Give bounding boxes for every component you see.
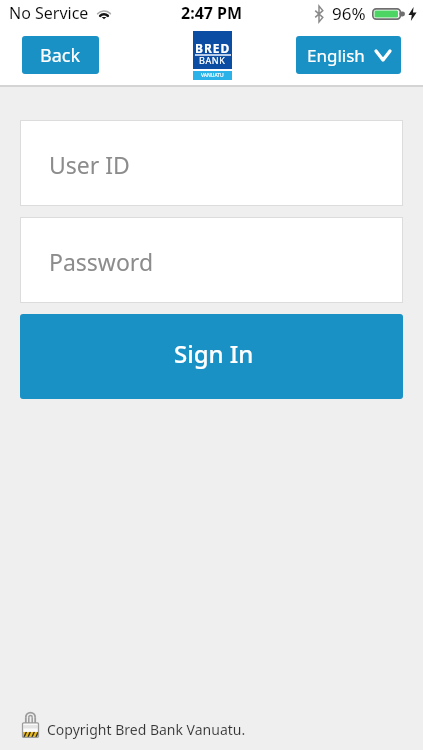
other: Secure connection [22,710,39,738]
staticText: BRED [195,40,231,56]
other: Bluetooth on [314,6,324,22]
other: BRED Bank Vanuatu logo [193,31,232,80]
staticText: 2:47 PM [181,2,243,24]
other: Choose language [376,51,390,60]
staticText: Copyright Bred Bank Vanuatu. [47,720,246,739]
button[interactable]: Sign In [20,314,403,399]
button[interactable]: English [296,36,401,74]
button[interactable]: Password [20,217,403,303]
staticText: BANK [199,54,226,66]
staticText: 96% [332,2,366,25]
other: Charging [408,7,417,21]
staticText: Back [40,43,81,68]
staticText: User ID [49,149,130,180]
button[interactable]: Back [22,36,99,74]
staticText: VANUATU [201,72,224,79]
staticText: Sign In [174,337,254,370]
button[interactable]: User ID [20,120,403,206]
other: Wi-Fi signal [96,7,112,19]
staticText: Password [49,246,154,277]
other: Battery 96 percent [372,8,405,20]
staticText: No Service [9,2,89,24]
staticText: English [307,44,365,67]
